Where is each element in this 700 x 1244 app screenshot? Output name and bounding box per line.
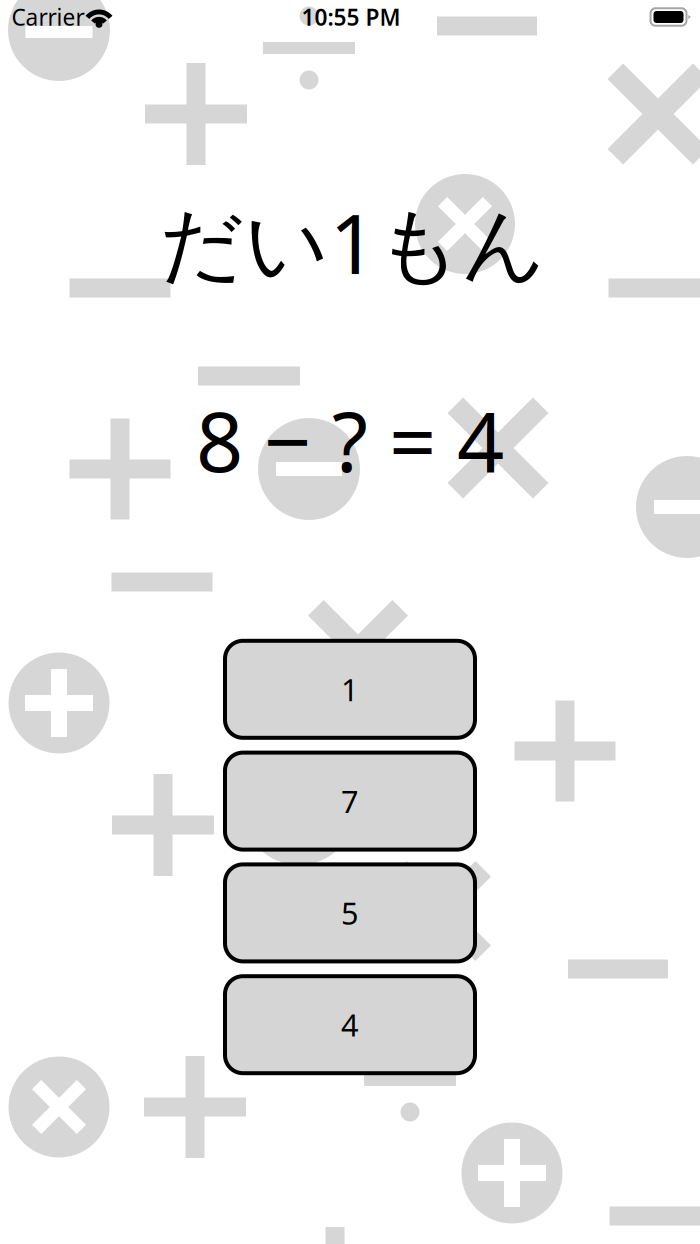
staticText: 8 − ? = 4 [196,385,504,495]
staticText: Carrier [11,2,84,32]
staticText: 7 [341,781,359,821]
button[interactable]: 4 [223,974,477,1075]
staticText: 10:55 PM [301,2,400,32]
button[interactable]: 7 [223,751,477,852]
staticText: だい1もん [159,187,546,297]
button[interactable]: 5 [223,862,477,963]
staticText: 4 [341,1004,359,1045]
staticText: 1 [341,669,359,710]
button[interactable]: 1 [223,639,477,740]
staticText: 5 [341,892,359,933]
